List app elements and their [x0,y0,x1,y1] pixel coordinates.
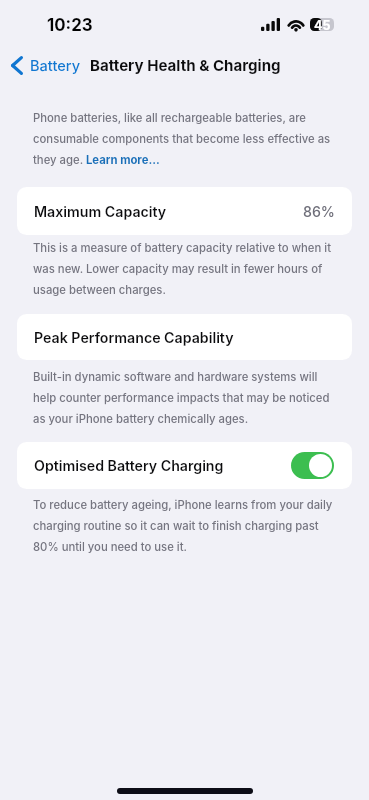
staticText: Maximum Capacity [34,203,167,220]
staticText: Optimised Battery Charging [34,457,224,474]
button[interactable]: Optimised Battery Charging toggle [291,452,334,479]
staticText: 86% [303,203,335,220]
staticText: 45 [314,18,331,31]
staticText: Phone batteries, like all rechargeable b… [33,106,342,169]
staticText: Battery Health & Charging [90,56,281,74]
staticText: Battery [30,57,81,75]
staticText: Built-in dynamic software and hardware s… [33,365,342,428]
staticText: 10:23 [47,15,93,35]
staticText: This is a measure of battery capacity re… [33,236,342,299]
button[interactable]: Maximum Capacity [17,187,352,235]
staticText: To reduce battery ageing, iPhone learns … [33,493,342,556]
button[interactable]: Battery [7,53,87,78]
button[interactable]: Peak Performance Capability [17,314,352,360]
staticText: Peak Performance Capability [34,329,234,346]
